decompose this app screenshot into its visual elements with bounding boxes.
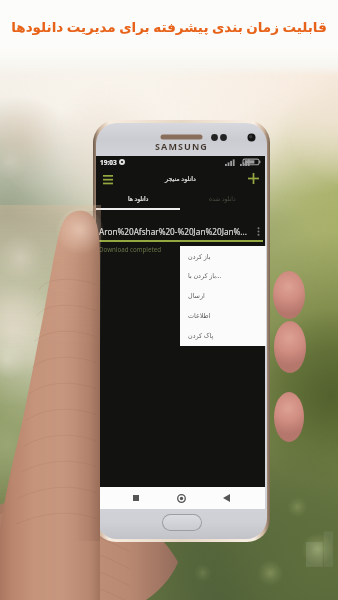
button[interactable]: Open navigation drawer (100, 171, 115, 186)
button[interactable]: باز کردن (180, 247, 266, 266)
button[interactable]: دانلود شده (180, 189, 265, 208)
staticText: دانلود ها (128, 195, 149, 203)
staticText: 19:03 (100, 158, 117, 167)
staticText: ارسال (188, 292, 205, 299)
button[interactable]: Recent apps (127, 489, 145, 507)
staticText: باز کردن با... (188, 271, 222, 280)
staticText: Aron%20Afshar%20-%20Jan%20Jan%... (99, 226, 252, 237)
staticText: اطلاعات (188, 312, 211, 319)
button[interactable]: Home button (163, 515, 201, 530)
staticText: SAMSUNG (155, 140, 208, 152)
button[interactable]: باز کردن با... (180, 266, 266, 285)
button[interactable]: Back (217, 489, 235, 507)
button[interactable]: Home (172, 489, 190, 507)
staticText: دانلود شده (209, 195, 236, 203)
button[interactable]: دانلود ها (96, 189, 180, 208)
staticText: پاک کردن (188, 331, 214, 340)
button[interactable]: اطلاعات (180, 305, 266, 325)
staticText: دانلود منیجر (165, 174, 196, 183)
staticText: قابلیت زمان بندی پیشرفته برای مدیریت دان… (0, 18, 338, 36)
button[interactable]: پاک کردن (180, 325, 266, 345)
staticText: Download completed (99, 245, 161, 253)
staticText: باز کردن (188, 252, 211, 261)
button[interactable]: ارسال (180, 285, 266, 305)
button[interactable]: Add new download (246, 171, 261, 186)
button[interactable]: More options (252, 224, 264, 239)
